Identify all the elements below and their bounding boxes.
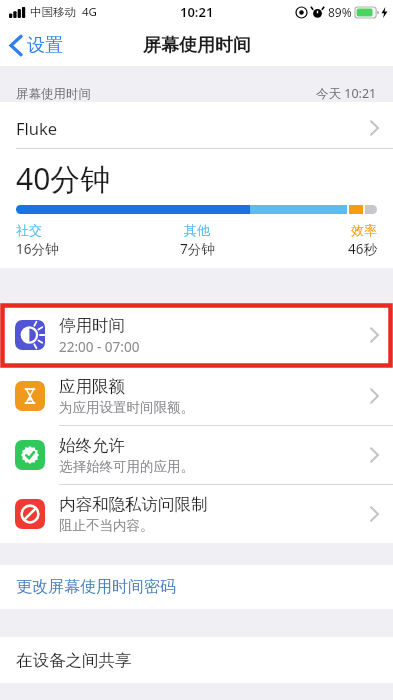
staticText: 16分钟	[16, 240, 59, 258]
other: 打开	[370, 120, 379, 136]
button[interactable]: 设置	[0, 28, 73, 63]
staticText: 40分钟	[16, 158, 111, 199]
staticText: 设置	[27, 34, 63, 57]
staticText: 社交	[16, 222, 42, 238]
staticText: 10:21	[180, 3, 214, 21]
other: 打开	[370, 506, 379, 522]
button[interactable]: 始终允许	[0, 426, 393, 485]
staticText: 中国移动	[30, 5, 76, 19]
other: 内容和隐私访问限制	[15, 499, 45, 529]
staticText: 4G	[82, 4, 97, 20]
staticText: 屏幕使用时间	[143, 34, 251, 57]
staticText: 停用时间	[59, 315, 125, 336]
other: 停用时间	[15, 320, 45, 350]
staticText: 选择始终可用的应用。	[59, 458, 194, 475]
staticText: 效率	[351, 222, 377, 238]
other: 打开	[370, 388, 379, 404]
staticText: 在设备之间共享	[16, 650, 132, 671]
button[interactable]: 更改屏幕使用时间密码	[0, 565, 393, 609]
staticText: 阻止不当内容。	[59, 517, 154, 534]
other: 应用限额	[15, 381, 45, 411]
staticText: 其他	[184, 222, 210, 238]
staticText: 今天 10:21	[316, 85, 377, 102]
button[interactable]: 内容和隐私访问限制	[0, 485, 393, 543]
staticText: 始终允许	[59, 435, 125, 456]
staticText: 更改屏幕使用时间密码	[16, 577, 176, 597]
staticText: 7分钟	[180, 240, 215, 258]
staticText: 屏幕使用时间	[16, 86, 91, 102]
staticText: 22:00 - 07:00	[59, 338, 140, 356]
staticText: 89%	[328, 4, 352, 20]
other: 始终允许	[15, 440, 45, 470]
button[interactable]: 应用限额	[0, 367, 393, 426]
staticText: Fluke	[16, 117, 58, 139]
other: 打开	[370, 447, 379, 463]
staticText: 为应用设置时间限额。	[59, 399, 194, 416]
staticText: 内容和隐私访问限制	[59, 494, 208, 515]
button[interactable]: Fluke	[0, 108, 393, 148]
staticText: 46秒	[348, 240, 377, 258]
other: 打开	[370, 327, 379, 343]
button[interactable]: 在设备之间共享	[0, 637, 393, 683]
staticText: 应用限额	[59, 376, 125, 397]
button[interactable]: 停用时间	[0, 304, 393, 367]
